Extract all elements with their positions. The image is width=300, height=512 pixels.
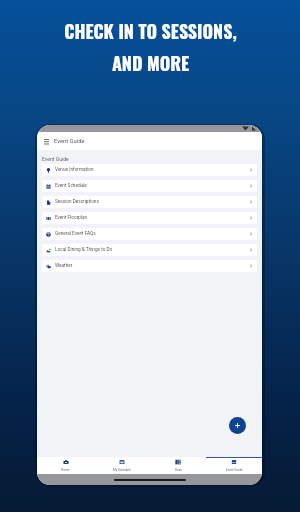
button[interactable]: Home bbox=[37, 457, 94, 474]
staticText: Local Dining & Things to Do bbox=[55, 247, 113, 253]
staticText: Venue Information bbox=[55, 167, 94, 173]
button[interactable]: General Event FAQs bbox=[42, 228, 257, 240]
staticText: General Event FAQs bbox=[55, 231, 96, 237]
button[interactable]: Local Dining & Things to Do bbox=[42, 244, 257, 256]
button[interactable]: Scan bbox=[150, 457, 206, 474]
staticText: Event Guide bbox=[226, 468, 243, 472]
staticText: Session Descriptions bbox=[55, 199, 99, 205]
button[interactable]: Open navigation menu bbox=[42, 137, 51, 146]
staticText: Weather bbox=[55, 263, 73, 269]
button[interactable]: Event Schedule bbox=[42, 180, 257, 192]
staticText: Scan bbox=[175, 468, 182, 472]
button[interactable]: Weather bbox=[42, 260, 257, 272]
staticText: Home bbox=[61, 468, 70, 472]
button[interactable]: Add bbox=[229, 417, 246, 434]
staticText: Event Guide bbox=[42, 156, 69, 162]
button[interactable]: Session Descriptions bbox=[42, 196, 257, 208]
button[interactable]: Event Guide bbox=[206, 457, 262, 474]
button[interactable]: My Schedule bbox=[94, 457, 150, 474]
staticText: CHECK IN TO SESSIONS, AND MORE bbox=[64, 18, 237, 76]
button[interactable]: Venue Information bbox=[42, 164, 257, 176]
staticText: My Schedule bbox=[113, 468, 131, 472]
staticText: Event Schedule bbox=[55, 183, 87, 189]
button[interactable]: Event Floorplan bbox=[42, 212, 257, 224]
staticText: Event Guide bbox=[54, 138, 85, 145]
staticText: Event Floorplan bbox=[55, 215, 88, 221]
